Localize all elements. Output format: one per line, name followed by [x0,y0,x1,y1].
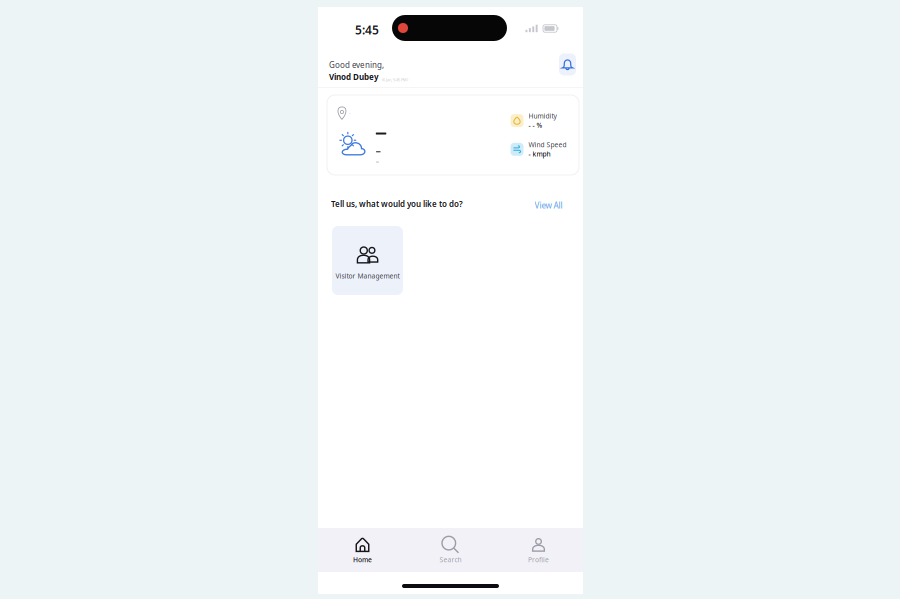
staticText: Visitor Management [335,271,399,280]
staticText: Profile [528,555,549,564]
button[interactable]: Home [318,529,406,572]
staticText: - - % [528,121,542,130]
staticText: 5:45 [355,22,379,38]
button[interactable]: Visitor Management [332,226,403,295]
staticText: Humidity [528,111,556,120]
button[interactable]: Notifications [559,53,576,75]
staticText: Home [353,555,372,564]
staticText: Good evening, [329,59,384,70]
staticText: (6 Jan, 5:45 PM) [382,77,408,82]
button[interactable]: Search [406,529,494,572]
staticText: - kmph [528,150,550,158]
staticText: View All [534,200,562,211]
button[interactable]: View All [532,198,564,213]
staticText: Wind Speed [528,140,566,149]
staticText: - [349,109,351,117]
staticText: Tell us, what would you like to do? [331,198,463,209]
staticText: Vinod Dubey [329,72,379,82]
staticText: Search [439,555,461,564]
button[interactable]: Profile [494,529,582,572]
